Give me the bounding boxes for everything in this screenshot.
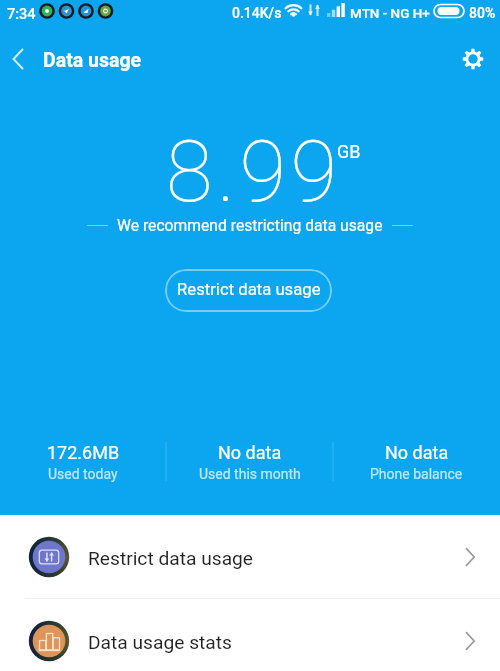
staticText: Restrict data usage	[177, 280, 321, 300]
staticText: Used today	[48, 466, 118, 482]
staticText: MTN - NG H+	[350, 5, 430, 21]
button[interactable]: Restrict data usage	[165, 269, 332, 312]
staticText: GB	[337, 141, 361, 162]
staticText: 7:34	[7, 6, 36, 23]
staticText: We recommend restricting data usage	[117, 216, 383, 234]
staticText: Data usage stats	[88, 631, 232, 654]
staticText: 80%	[469, 5, 496, 21]
button[interactable]: Settings	[451, 37, 495, 81]
staticText: Used this month	[199, 466, 301, 482]
staticText: No data	[385, 442, 449, 463]
staticText: No data	[218, 442, 282, 463]
staticText: 8.99	[166, 122, 342, 222]
button[interactable]: Data usage stats	[0, 599, 500, 671]
staticText: 0.14K/s	[232, 5, 282, 21]
button[interactable]: Back	[0, 33, 40, 73]
staticText: 172.6MB	[47, 442, 120, 463]
staticText: Data usage	[43, 49, 142, 72]
staticText: Phone balance	[370, 466, 463, 482]
staticText: Restrict data usage	[88, 547, 254, 570]
button[interactable]: Restrict data usage	[0, 515, 500, 599]
